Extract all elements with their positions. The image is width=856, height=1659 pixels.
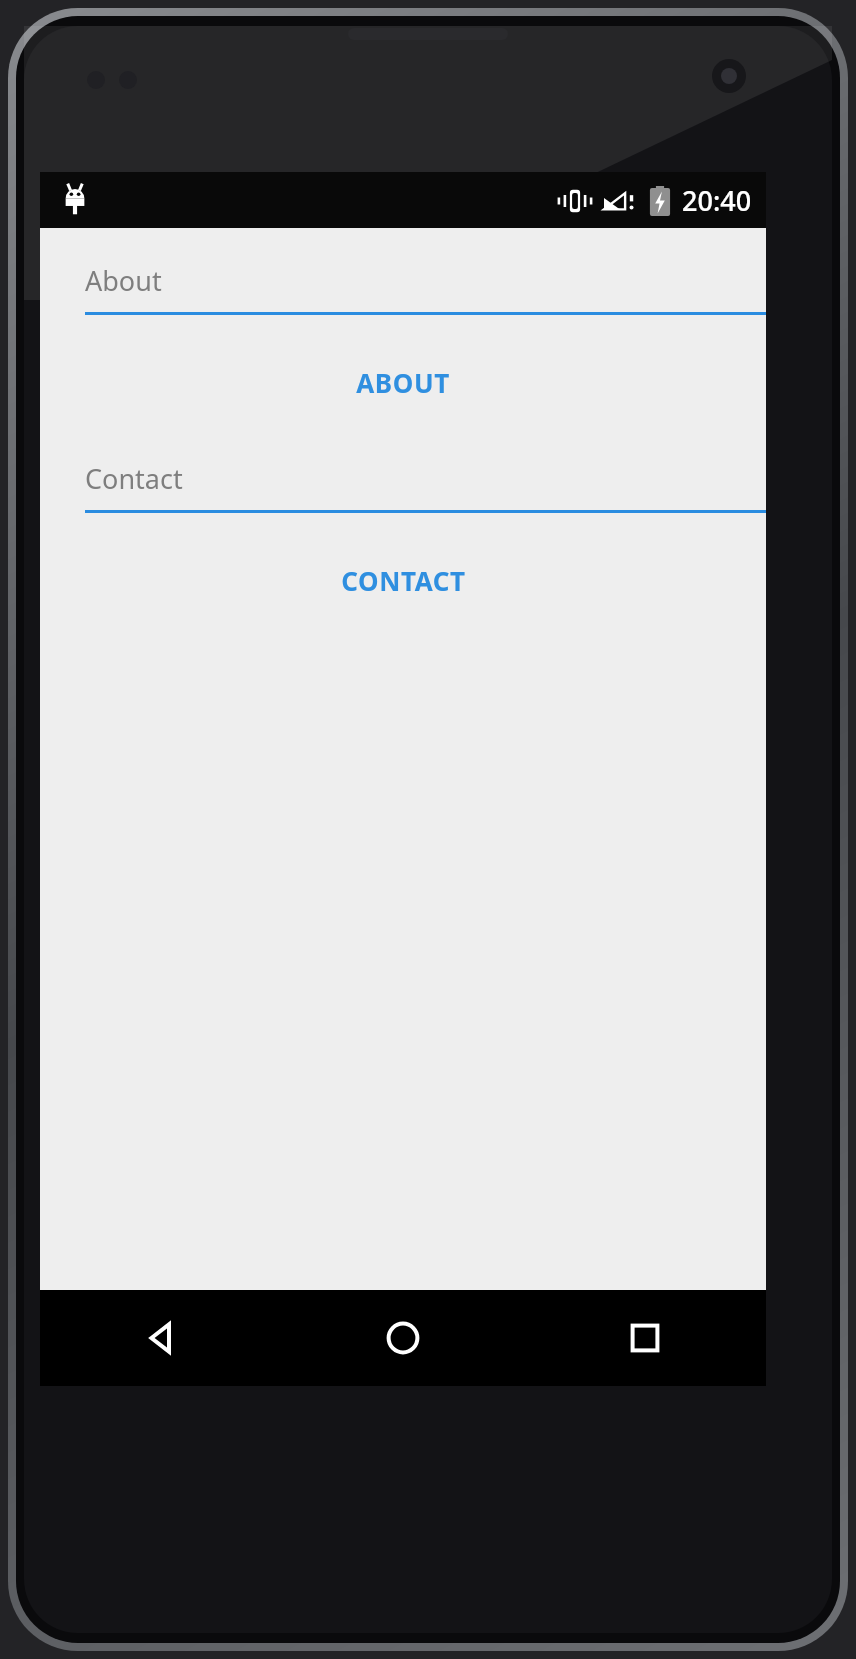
button[interactable]: Recent apps (524, 1290, 766, 1386)
button[interactable]: Home (282, 1290, 524, 1386)
staticText: CONTACT (341, 563, 466, 598)
button[interactable]: About (85, 258, 766, 315)
staticText: 20:40 (682, 182, 752, 219)
staticText: Contact (85, 460, 183, 497)
button[interactable]: Contact (85, 456, 766, 513)
button[interactable]: CONTACT (323, 551, 484, 610)
staticText: ABOUT (356, 365, 450, 400)
staticText: About (85, 262, 162, 299)
button[interactable]: ABOUT (338, 353, 468, 412)
button[interactable]: Back (40, 1290, 282, 1386)
